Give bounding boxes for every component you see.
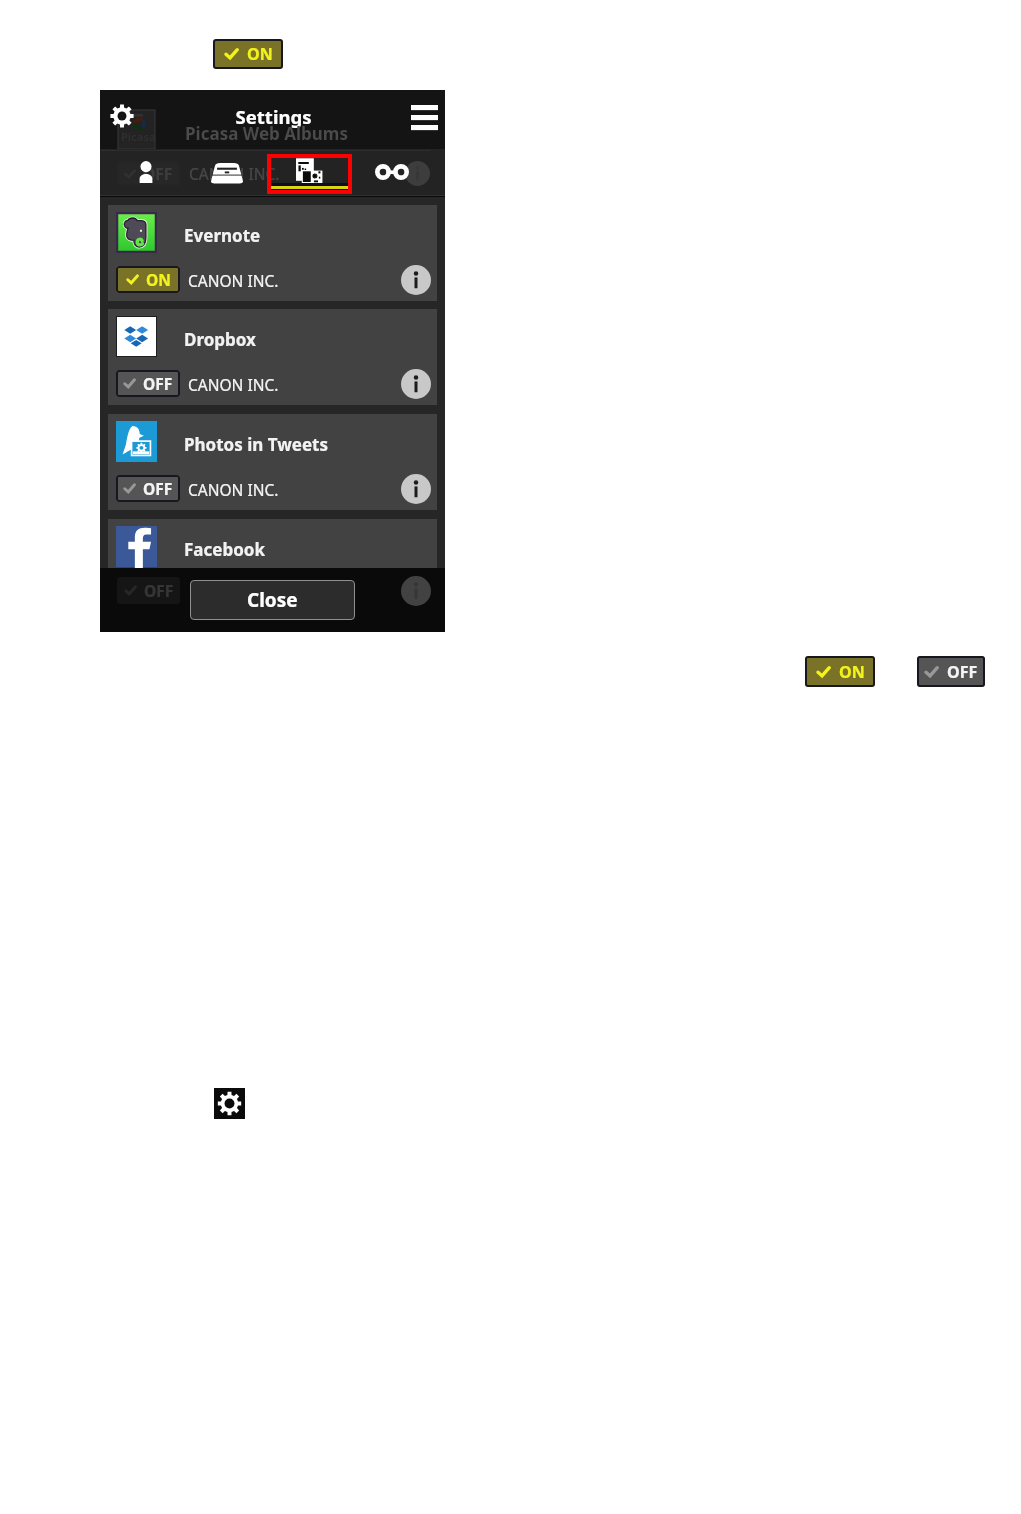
- button[interactable]: Photos in Tweets: [108, 414, 437, 510]
- staticText: Dropbox: [184, 328, 256, 351]
- button[interactable]: ON: [116, 266, 180, 293]
- staticText: CANON INC.: [189, 579, 280, 600]
- staticText: Photos in Tweets: [184, 433, 328, 456]
- staticText: ON: [839, 661, 865, 683]
- button[interactable]: Settings: [214, 1088, 245, 1119]
- button[interactable]: OFF: [116, 370, 180, 397]
- button[interactable]: Dropbox: [108, 309, 437, 405]
- button[interactable]: OFF: [117, 161, 180, 186]
- staticText: Facebook: [184, 538, 265, 561]
- button[interactable]: OFF: [917, 656, 985, 687]
- staticText: OFF: [143, 583, 173, 604]
- staticText: OFF: [143, 163, 173, 184]
- button[interactable]: Information: [405, 161, 430, 186]
- button[interactable]: ON: [805, 656, 875, 687]
- staticText: Close: [247, 587, 298, 613]
- button[interactable]: Information: [401, 474, 431, 504]
- button[interactable]: Information: [401, 576, 431, 606]
- button[interactable]: Account settings: [138, 161, 154, 183]
- staticText: Picasa: [121, 129, 156, 144]
- button[interactable]: Information: [401, 265, 431, 295]
- staticText: ON: [146, 269, 171, 290]
- button[interactable]: Web service settings: [296, 158, 323, 183]
- staticText: Picasa Web Albums: [94, 122, 439, 145]
- button[interactable]: Information: [401, 579, 431, 609]
- button[interactable]: Settings: [110, 104, 134, 128]
- button[interactable]: Printer settings: [211, 162, 243, 183]
- staticText: OFF: [947, 661, 978, 683]
- staticText: OFF: [143, 373, 173, 394]
- button[interactable]: OFF: [116, 475, 180, 502]
- button[interactable]: Link settings: [375, 164, 409, 180]
- button[interactable]: Menu: [411, 105, 438, 130]
- staticText: CANON INC.: [188, 374, 279, 395]
- button[interactable]: OFF: [117, 577, 180, 604]
- button[interactable]: Evernote: [108, 205, 437, 301]
- staticText: CANON INC.: [189, 163, 280, 184]
- button[interactable]: Facebook: [108, 519, 437, 615]
- staticText: CANON INC.: [188, 479, 279, 500]
- staticText: CANON INC.: [188, 584, 279, 605]
- button[interactable]: Close: [190, 580, 355, 620]
- button[interactable]: OFF: [116, 580, 180, 607]
- staticText: OFF: [144, 580, 174, 601]
- staticText: OFF: [143, 478, 173, 499]
- staticText: CANON INC.: [188, 270, 279, 291]
- staticText: Evernote: [184, 224, 261, 247]
- staticText: ON: [247, 43, 273, 65]
- staticText: Settings: [101, 104, 446, 129]
- button[interactable]: Information: [401, 369, 431, 399]
- button[interactable]: ON: [213, 39, 283, 69]
